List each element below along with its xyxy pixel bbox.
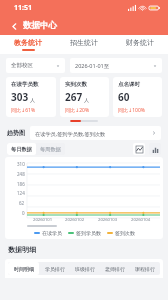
staticText: 学员排行 bbox=[45, 266, 65, 272]
button[interactable]: 折线图 bbox=[133, 143, 145, 155]
button[interactable]: 每日数据 bbox=[7, 143, 36, 155]
staticText: 267 bbox=[65, 90, 83, 104]
staticText: 时间明细 bbox=[14, 266, 34, 272]
button[interactable]: 在读学员数 bbox=[6, 77, 56, 117]
staticText: 同比↓20% bbox=[65, 107, 90, 113]
staticText: 全部校区 bbox=[11, 62, 33, 69]
staticText: 2026-01-01至2026-01-12 bbox=[75, 62, 114, 70]
button[interactable]: 点名课时 bbox=[113, 77, 162, 117]
staticText: 11:51 bbox=[14, 3, 32, 13]
button[interactable]: 返回 bbox=[7, 19, 21, 33]
staticText: 62 bbox=[19, 200, 25, 206]
staticText: 20260102 bbox=[65, 217, 85, 223]
staticText: 课程排行 bbox=[135, 266, 155, 272]
staticText: 20260104 bbox=[131, 217, 151, 223]
staticText: 财务统计 bbox=[126, 38, 154, 47]
staticText: 老师排行 bbox=[105, 266, 125, 272]
staticText: 60 bbox=[118, 90, 130, 104]
staticText: 数据明细 bbox=[8, 245, 36, 254]
staticText: 20260101 bbox=[33, 217, 53, 223]
button[interactable]: 柱状图 bbox=[149, 143, 161, 155]
staticText: 人 bbox=[84, 97, 89, 103]
staticText: 303 bbox=[11, 90, 29, 104]
button[interactable]: 课程排行 bbox=[130, 262, 160, 275]
staticText: 310 bbox=[17, 161, 25, 167]
staticText: 趋势图 bbox=[7, 129, 25, 137]
staticText: 在读学员数 bbox=[11, 81, 39, 88]
staticText: 在读学员,签到学员数,签到次数 bbox=[35, 130, 106, 137]
staticText: 班级排行 bbox=[75, 266, 95, 272]
button[interactable]: 招生统计 bbox=[56, 35, 112, 54]
staticText: 同比↓100% bbox=[118, 107, 145, 113]
staticText: 20260103 bbox=[98, 217, 118, 223]
staticText: 248 bbox=[17, 171, 25, 177]
button[interactable]: 时间明细 bbox=[8, 262, 39, 275]
staticText: 点名课时 bbox=[118, 81, 140, 88]
staticText: 每周数据 bbox=[40, 146, 61, 153]
staticText: 教务统计 bbox=[14, 38, 42, 47]
staticText: 在读学员 bbox=[42, 230, 62, 236]
button[interactable]: 学员排行 bbox=[39, 262, 70, 275]
staticText: 186 bbox=[17, 181, 25, 187]
staticText: 每日数据 bbox=[11, 146, 32, 153]
button[interactable]: 2026-01-01至2026-01-12 bbox=[70, 58, 162, 73]
staticText: 签到次数 bbox=[115, 230, 135, 236]
staticText: 人 bbox=[30, 97, 35, 103]
button[interactable]: 教务统计 bbox=[0, 35, 56, 54]
staticText: 签到学员数 bbox=[76, 230, 101, 236]
staticText: 同比↓61% bbox=[11, 107, 36, 113]
button[interactable]: 全部校区 bbox=[6, 58, 65, 73]
button[interactable]: 班级排行 bbox=[70, 262, 100, 275]
button[interactable]: 老师排行 bbox=[100, 262, 130, 275]
staticText: 实到次数 bbox=[65, 81, 87, 88]
staticText: 招生统计 bbox=[70, 38, 98, 47]
button[interactable]: 在读学员,签到学员数,签到次数 bbox=[30, 126, 161, 140]
staticText: 0 bbox=[22, 210, 25, 216]
button[interactable]: 财务统计 bbox=[112, 35, 168, 54]
button[interactable]: 实到次数 bbox=[60, 77, 109, 117]
staticText: 数据中心 bbox=[23, 20, 57, 31]
button[interactable]: 每周数据 bbox=[36, 143, 65, 155]
staticText: 124 bbox=[17, 190, 25, 196]
